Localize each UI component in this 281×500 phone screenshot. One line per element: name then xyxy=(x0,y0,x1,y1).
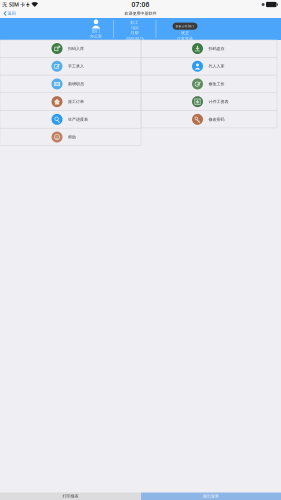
staticText: 扫码入库 xyxy=(68,46,84,51)
staticText: 代人入库 xyxy=(208,64,224,69)
staticText: 1001 xyxy=(130,25,138,30)
button[interactable]: 返回 xyxy=(0,9,19,18)
staticText: 切换公司/部门 xyxy=(175,24,194,28)
staticText: 生产进度表 xyxy=(68,117,88,122)
staticText: 无 SIM 卡 xyxy=(2,1,25,8)
button[interactable]: 新增职员 xyxy=(0,75,141,92)
staticText: 修改密码 xyxy=(208,117,224,122)
staticText: 日期 xyxy=(130,30,138,35)
button[interactable]: 退出登录 xyxy=(141,492,281,500)
staticText: 2020-04-15 xyxy=(125,35,143,41)
staticText: 帮助 xyxy=(68,135,76,139)
button[interactable]: 扫码盘存 xyxy=(141,40,277,57)
button[interactable]: 计件工资表 xyxy=(141,93,277,110)
button[interactable]: 生产进度表 xyxy=(0,111,141,128)
staticText: 07:06 xyxy=(131,0,149,9)
staticText: 手工录入 xyxy=(68,64,84,69)
staticText: 计件工资表 xyxy=(208,99,228,104)
button[interactable]: 帮助 xyxy=(0,128,141,146)
staticText: 正常登录 xyxy=(177,36,193,41)
staticText: 打印报表 xyxy=(62,494,78,499)
button[interactable]: 扫码入库 xyxy=(0,40,141,57)
staticText: 返回 xyxy=(8,11,16,16)
staticText: 部门 xyxy=(92,29,100,34)
staticText: 职工 xyxy=(130,20,138,25)
button[interactable]: 派工订单 xyxy=(0,93,141,110)
button[interactable]: 修改工价 xyxy=(141,75,277,92)
button[interactable]: 切换公司/部门 xyxy=(172,23,197,30)
button[interactable]: 修改密码 xyxy=(141,111,277,128)
staticText: 修改工价 xyxy=(208,81,224,86)
button[interactable]: 代人入库 xyxy=(141,58,277,75)
staticText: 退出登录 xyxy=(203,494,219,499)
staticText: 扫码盘存 xyxy=(208,46,224,51)
staticText: 派工订单 xyxy=(68,99,84,104)
staticText: 状态 xyxy=(181,30,189,35)
staticText: 欢迎使用中基软件 xyxy=(124,11,156,16)
button[interactable]: 打印报表 xyxy=(0,492,141,500)
button[interactable]: 手工录入 xyxy=(0,58,141,75)
staticText: 办公室 xyxy=(90,34,102,39)
staticText: 新增职员 xyxy=(68,81,84,86)
